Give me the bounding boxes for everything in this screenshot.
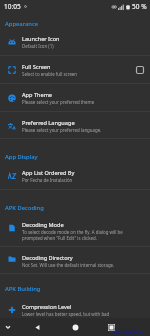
- staticText: Por Fecha de Instalación: [22, 177, 73, 183]
- staticText: Compression Level: [22, 303, 72, 311]
- button[interactable]: App List Ordered By: [0, 162, 150, 190]
- button[interactable]: Home: [69, 321, 81, 333]
- staticText: App List Ordered By: [22, 169, 75, 177]
- staticText: Default Icon (1): [22, 43, 54, 49]
- button[interactable]: Decoding Directory: [0, 247, 150, 274]
- staticText: prompted when "Full Edit" is clicked.: [22, 235, 97, 241]
- staticText: برنامج كول: [111, 327, 144, 335]
- staticText: Please select your preferred theme: [22, 99, 95, 105]
- staticText: Not Set. Will use the default internal s…: [22, 262, 115, 268]
- staticText: Decoding Mode: [22, 221, 64, 229]
- staticText: APK Decoding: [5, 204, 44, 212]
- staticText: Appearance: [5, 20, 39, 28]
- button[interactable]: Back: [31, 321, 43, 333]
- button[interactable]: Preferred Language: [0, 112, 150, 139]
- staticText: Full Screen: [22, 63, 51, 71]
- staticText: APK Building: [5, 285, 41, 293]
- button[interactable]: Full Screen: [0, 56, 150, 84]
- staticText: App Display: [5, 153, 38, 161]
- button[interactable]: App Theme: [0, 84, 150, 112]
- staticText: App Theme: [22, 91, 53, 99]
- staticText: Please select your preferred language.: [22, 127, 102, 133]
- staticText: Decoding Directory: [22, 254, 73, 262]
- staticText: Select to enable full screen: [22, 71, 78, 77]
- staticText: Preferred Language: [22, 119, 75, 127]
- staticText: To select decode mode on the fly. A dial…: [22, 229, 123, 235]
- button[interactable]: Compression Level: [0, 297, 150, 323]
- staticText: 10:05: [4, 2, 21, 11]
- button[interactable]: Decoding Mode: [0, 214, 150, 247]
- staticText: Launcher Icon: [22, 35, 60, 43]
- staticText: 50 %: [132, 2, 147, 11]
- button[interactable]: Recent apps: [105, 321, 117, 333]
- button[interactable]: Hide keyboard: [2, 321, 14, 333]
- button[interactable]: Launcher Icon: [0, 28, 150, 56]
- staticText: Lower level has better speed, but with b…: [22, 311, 110, 317]
